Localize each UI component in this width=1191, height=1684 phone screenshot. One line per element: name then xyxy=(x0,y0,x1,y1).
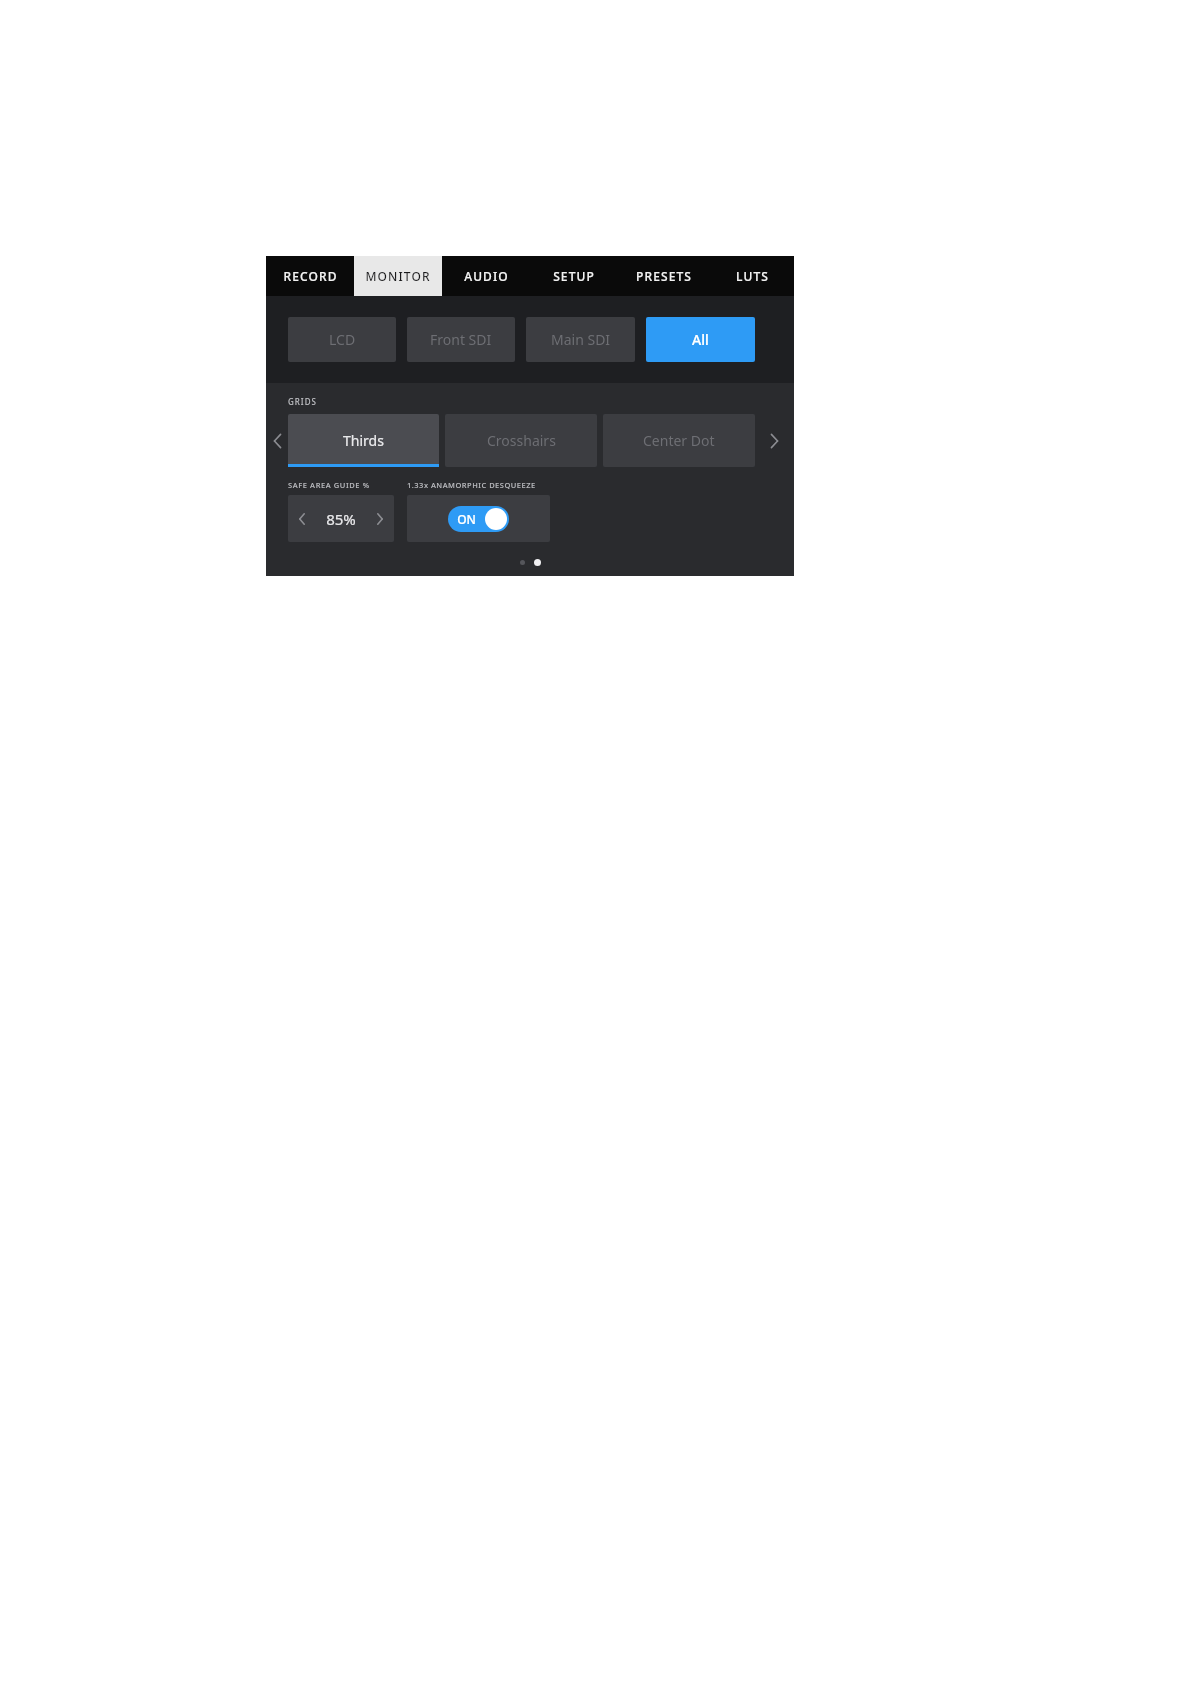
button[interactable]: LCD xyxy=(288,317,396,362)
staticText: Thirds xyxy=(343,431,384,450)
button[interactable]: PRESETS xyxy=(618,256,710,296)
staticText: 1.33x ANAMORPHIC DESQUEEZE xyxy=(407,480,536,490)
button[interactable]: SETUP xyxy=(530,256,618,296)
button[interactable]: LUTS xyxy=(710,256,794,296)
button[interactable]: Thirds xyxy=(288,414,439,467)
staticText: GRIDS xyxy=(288,396,317,407)
button[interactable]: Center Dot xyxy=(603,414,755,467)
staticText: Front SDI xyxy=(430,330,492,349)
button[interactable]: Front SDI xyxy=(407,317,515,362)
staticText: Main SDI xyxy=(551,330,611,349)
staticText: 85% xyxy=(316,509,366,529)
staticText: All xyxy=(692,330,709,349)
staticText: PRESETS xyxy=(636,268,692,284)
staticText: MONITOR xyxy=(365,268,431,284)
button[interactable]: MONITOR xyxy=(354,256,442,296)
staticText: AUDIO xyxy=(464,268,509,284)
button[interactable]: RECORD xyxy=(266,256,354,296)
staticText: RECORD xyxy=(283,268,338,284)
button[interactable]: 85% xyxy=(288,495,394,542)
button[interactable]: ON xyxy=(448,506,509,532)
button[interactable]: Main SDI xyxy=(526,317,635,362)
button[interactable]: Previous xyxy=(266,414,288,467)
staticText: Center Dot xyxy=(643,431,715,450)
button[interactable]: Crosshairs xyxy=(445,414,597,467)
staticText: SETUP xyxy=(553,268,595,284)
button[interactable]: Next xyxy=(755,414,794,467)
button[interactable]: All xyxy=(646,317,755,362)
staticText: LUTS xyxy=(736,268,769,284)
staticText: Crosshairs xyxy=(487,431,556,450)
staticText: LCD xyxy=(329,330,356,349)
button[interactable]: AUDIO xyxy=(442,256,530,296)
staticText: SAFE AREA GUIDE % xyxy=(288,480,370,490)
staticText: ON xyxy=(448,511,485,527)
